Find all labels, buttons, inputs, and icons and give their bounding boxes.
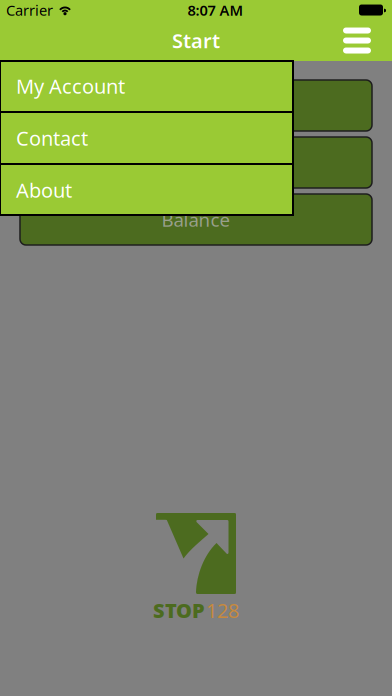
button[interactable]: History (20, 137, 372, 188)
button[interactable]: Balance (20, 194, 372, 245)
staticText: Start (172, 27, 220, 54)
staticText: History (164, 150, 228, 175)
staticText: Contact (16, 125, 88, 151)
staticText: Top Up (165, 93, 226, 118)
staticText: 128 (206, 597, 239, 624)
button[interactable]: About (0, 165, 293, 215)
button[interactable]: Contact (0, 113, 293, 163)
staticText: 8:07 AM (187, 0, 243, 20)
button[interactable]: My Account (0, 61, 293, 111)
staticText: My Account (16, 73, 125, 99)
button[interactable]: Menu (327, 21, 392, 59)
staticText: Carrier (6, 0, 53, 20)
staticText: STOP (153, 597, 205, 624)
staticText: About (16, 177, 72, 203)
button[interactable]: Top Up (20, 80, 372, 131)
staticText: Balance (161, 207, 230, 232)
